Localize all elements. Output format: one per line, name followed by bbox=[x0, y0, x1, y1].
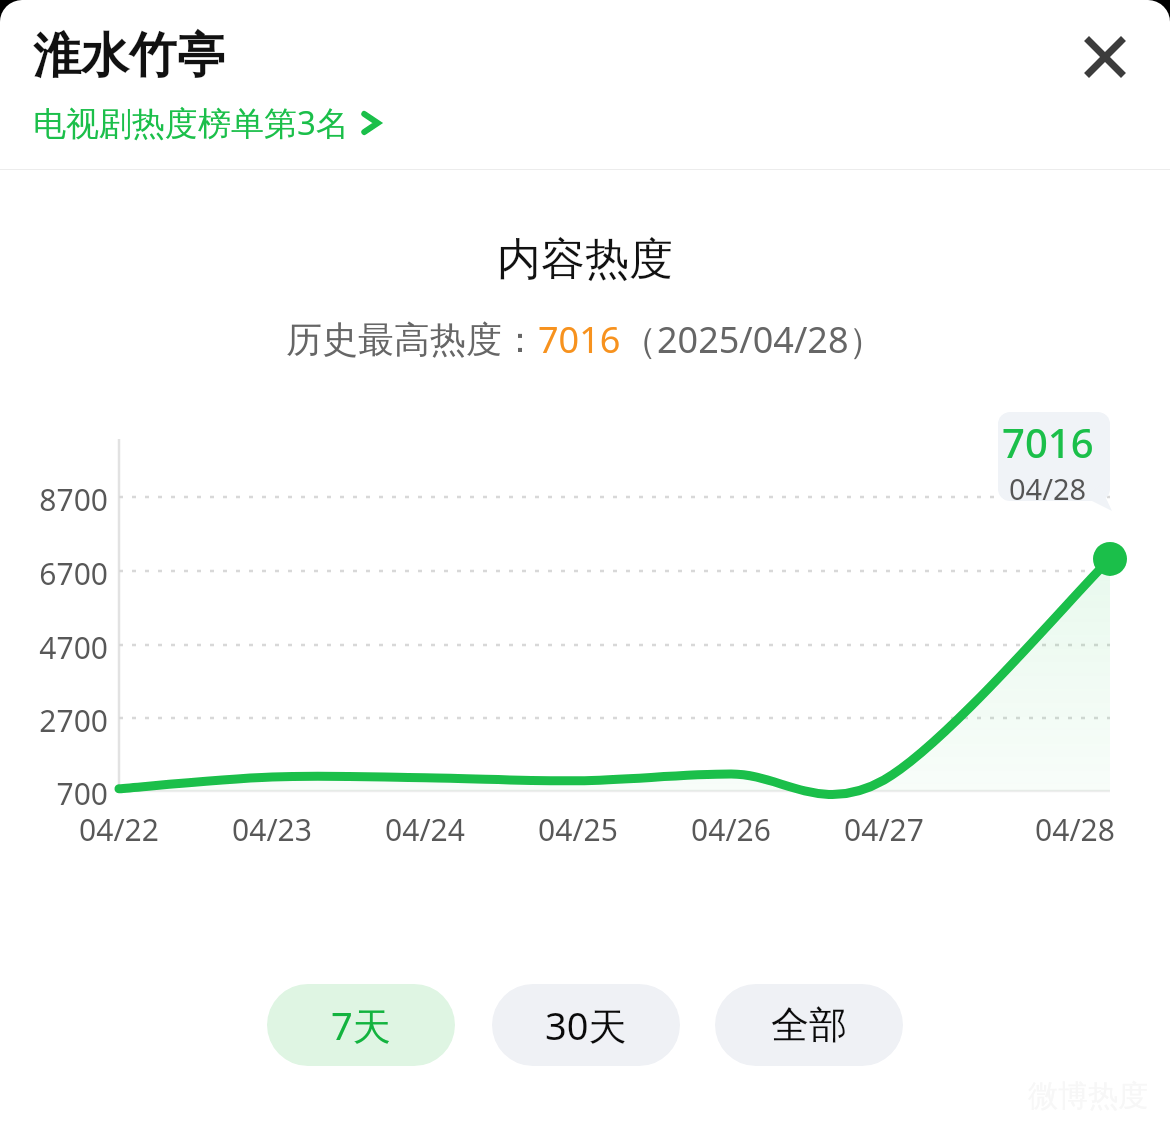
button[interactable]: 全部 bbox=[715, 984, 903, 1066]
staticText: 淮水竹亭 bbox=[33, 26, 225, 86]
staticText: 7天 bbox=[331, 999, 391, 1051]
staticText: 04/25 bbox=[508, 809, 648, 850]
staticText: 30天 bbox=[545, 999, 627, 1051]
staticText: 6700 bbox=[0, 553, 108, 594]
staticText: 04/23 bbox=[202, 809, 342, 850]
staticText: 内容热度 bbox=[0, 232, 1170, 287]
staticText: 4700 bbox=[0, 627, 108, 668]
staticText: 8700 bbox=[0, 479, 108, 520]
staticText: 2700 bbox=[0, 700, 108, 741]
staticText: 电视剧热度榜单第3名 bbox=[33, 100, 349, 145]
staticText: 700 bbox=[0, 773, 108, 814]
staticText: 全部 bbox=[771, 1001, 847, 1049]
button[interactable]: 7天 bbox=[267, 984, 455, 1066]
staticText: 微博热度 bbox=[1028, 1077, 1148, 1115]
staticText: 历史最高热度： bbox=[286, 317, 538, 362]
staticText: 04/22 bbox=[49, 809, 189, 850]
button[interactable]: 电视剧热度榜单第3名 bbox=[33, 100, 383, 145]
staticText: 04/26 bbox=[661, 809, 801, 850]
button[interactable]: Close bbox=[1070, 22, 1140, 92]
staticText: 04/28 bbox=[1009, 469, 1087, 508]
staticText: 7016 bbox=[538, 315, 621, 364]
staticText: 04/27 bbox=[814, 809, 954, 850]
button[interactable]: 30天 bbox=[492, 984, 680, 1066]
staticText: 04/24 bbox=[355, 809, 495, 850]
staticText: 04/28 bbox=[1005, 809, 1145, 850]
staticText: 7016 bbox=[1002, 415, 1094, 469]
staticText: （2025/04/28） bbox=[621, 315, 885, 364]
